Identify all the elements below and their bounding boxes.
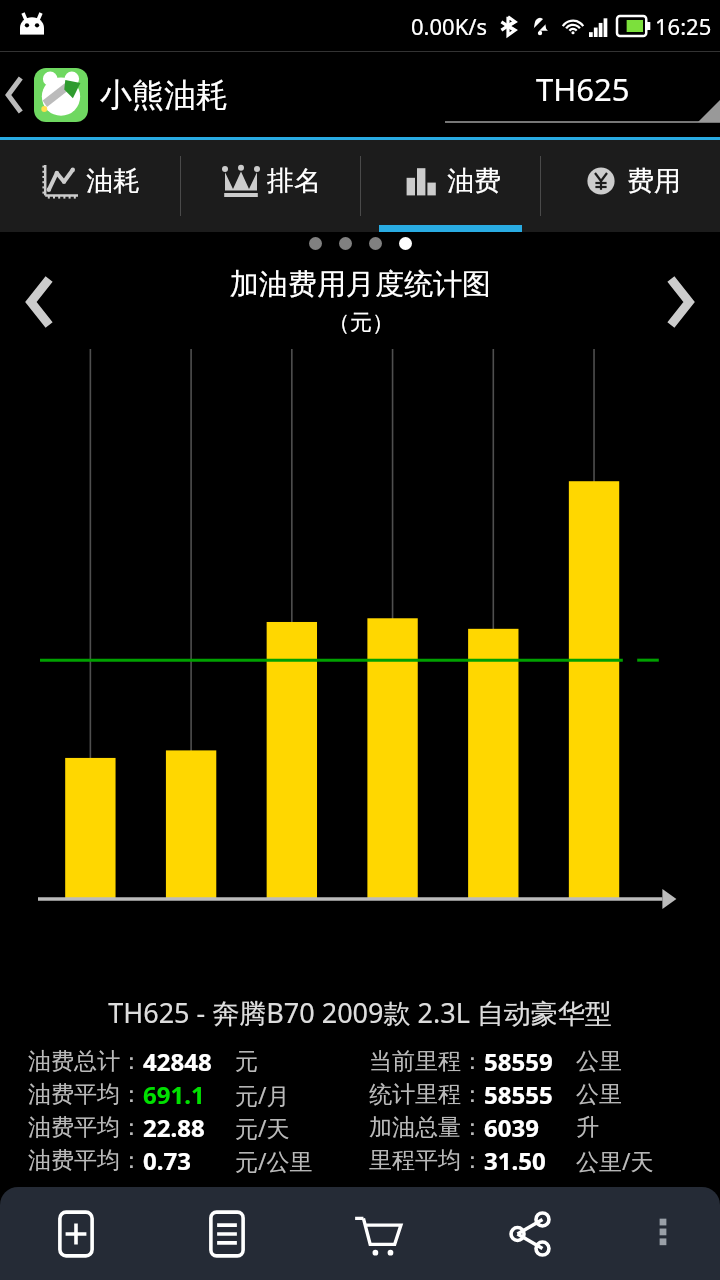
button[interactable]: 费用 — [541, 140, 720, 232]
staticText: 统计里程： — [369, 1080, 484, 1109]
staticText: 里程平均： — [369, 1146, 484, 1175]
staticText: 31.50 — [484, 1144, 546, 1177]
staticText: 元/公里 — [235, 1145, 313, 1176]
staticText: 0.00K/s — [411, 11, 487, 41]
staticText: 公里 — [576, 1080, 622, 1109]
staticText: （元） — [328, 309, 394, 337]
staticText: 油费总计： — [28, 1047, 143, 1076]
staticText: 油费 — [447, 164, 501, 198]
staticText: 加油总量： — [369, 1113, 484, 1142]
staticText: 油费平均： — [28, 1080, 143, 1109]
button[interactable]: 油耗 — [0, 140, 180, 232]
staticText: 16:25 — [655, 11, 712, 41]
button[interactable]: More — [606, 1187, 720, 1280]
button[interactable]: Next — [640, 262, 720, 342]
staticText: 0.73 — [143, 1144, 191, 1177]
button[interactable]: 排名 — [181, 140, 360, 232]
button[interactable]: Share — [454, 1187, 606, 1280]
staticText: 排名 — [267, 164, 321, 198]
staticText: 油费平均： — [28, 1113, 143, 1142]
button[interactable]: 油费 — [361, 140, 540, 232]
staticText: 加油费用月度统计图 — [230, 266, 491, 303]
staticText: 公里 — [576, 1047, 622, 1076]
button[interactable]: TH625 — [445, 52, 720, 137]
staticText: 691.1 — [143, 1078, 205, 1111]
staticText: 58555 — [484, 1078, 553, 1111]
staticText: 升 — [576, 1113, 599, 1142]
staticText: 费用 — [627, 164, 681, 198]
button[interactable]: Previous — [0, 262, 80, 342]
staticText: 当前里程： — [369, 1047, 484, 1076]
staticText: 小熊油耗 — [100, 75, 228, 115]
button[interactable]: Back — [0, 52, 30, 137]
button[interactable]: Add — [0, 1187, 151, 1280]
button[interactable]: List — [151, 1187, 302, 1280]
staticText: TH625 — [536, 68, 630, 110]
staticText: 公里/天 — [576, 1145, 654, 1176]
staticText: 元/月 — [235, 1079, 290, 1110]
staticText: 油耗 — [86, 164, 140, 198]
staticText: 42848 — [143, 1045, 212, 1078]
staticText: 元/天 — [235, 1112, 290, 1143]
button[interactable]: Cart — [302, 1187, 454, 1280]
staticText: 58559 — [484, 1045, 553, 1078]
staticText: TH625 - 奔腾B70 2009款 2.3L 自动豪华型 — [0, 994, 720, 1031]
staticText: 22.88 — [143, 1111, 205, 1144]
staticText: 油费平均： — [28, 1146, 143, 1175]
staticText: 6039 — [484, 1111, 539, 1144]
staticText: 元 — [235, 1047, 258, 1076]
